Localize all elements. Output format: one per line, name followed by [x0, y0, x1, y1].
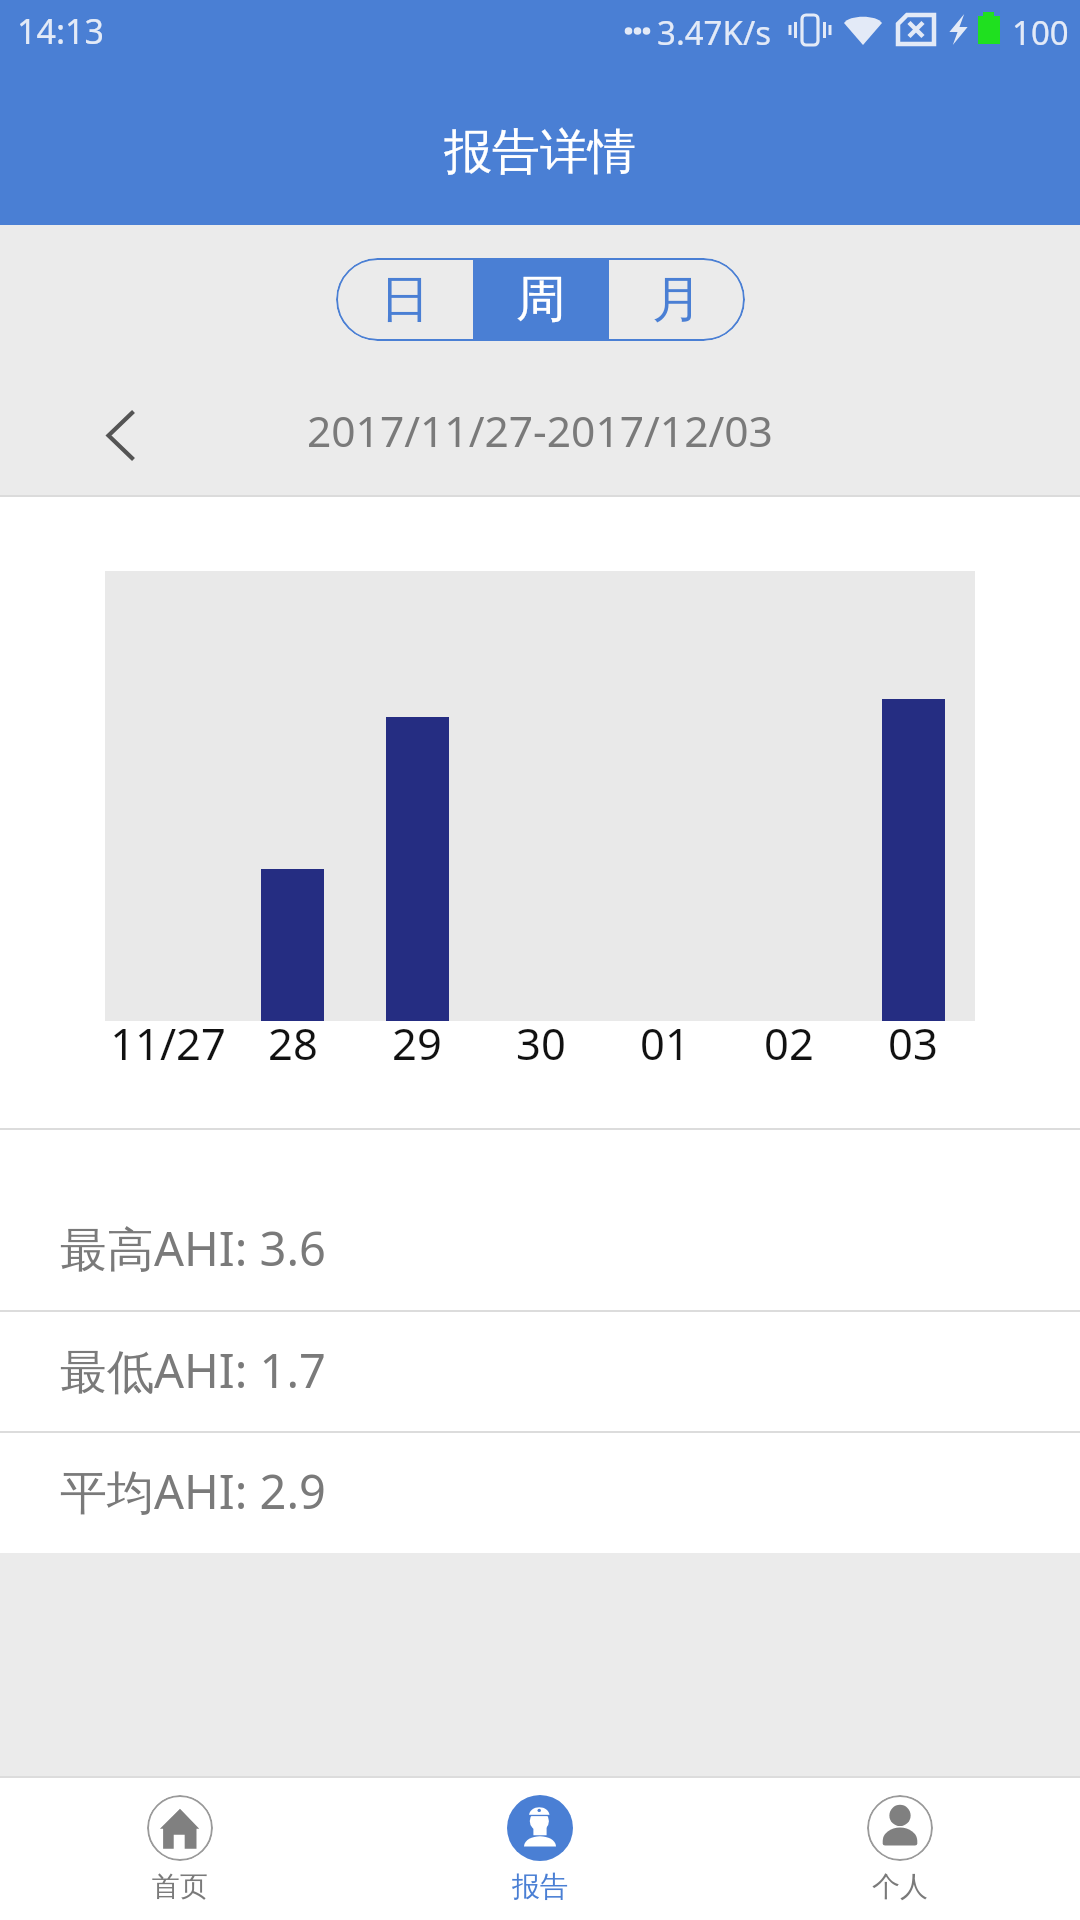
- staticText: 29: [392, 1013, 442, 1072]
- staticText: 报告: [512, 1869, 568, 1904]
- staticText: 03: [888, 1013, 938, 1072]
- staticText: 01: [640, 1013, 690, 1072]
- button[interactable]: 平均AHI: 2.9: [0, 1433, 1080, 1553]
- staticText: 02: [764, 1013, 814, 1072]
- staticText: 月: [652, 268, 702, 331]
- staticText: 3.47K/s: [657, 10, 771, 55]
- button[interactable]: 个人: [720, 1778, 1080, 1920]
- staticText: 日: [380, 268, 430, 331]
- staticText: 30: [516, 1013, 566, 1072]
- staticText: 个人: [872, 1869, 928, 1904]
- button[interactable]: 月: [609, 258, 745, 341]
- button[interactable]: 日: [336, 258, 473, 341]
- staticText: 平均AHI: 2.9: [60, 1459, 326, 1523]
- staticText: 14:13: [17, 8, 104, 54]
- staticText: 2017/11/27-2017/12/03: [307, 402, 773, 460]
- button[interactable]: 首页: [0, 1778, 360, 1920]
- staticText: 报告详情: [444, 122, 636, 182]
- staticText: 首页: [152, 1869, 208, 1904]
- button[interactable]: 最低AHI: 1.7: [0, 1312, 1080, 1431]
- button[interactable]: 报告: [360, 1778, 720, 1920]
- button[interactable]: 最高AHI: 3.6: [0, 1130, 1080, 1310]
- staticText: 最低AHI: 1.7: [60, 1338, 326, 1402]
- staticText: 最高AHI: 3.6: [60, 1216, 326, 1280]
- button[interactable]: Previous period: [81, 395, 161, 475]
- staticText: 周: [516, 268, 566, 331]
- staticText: 100: [1012, 10, 1069, 55]
- staticText: 28: [268, 1013, 318, 1072]
- staticText: 11/27: [110, 1013, 226, 1072]
- button[interactable]: 周: [473, 258, 609, 341]
